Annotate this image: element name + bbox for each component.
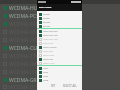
- button[interactable]: WCDMA-B19: [3, 84, 120, 90]
- staticText: WCDMA-CLR-850: [43, 46, 57, 48]
- staticText: WCDMA-J1700: [43, 62, 55, 64]
- staticText: WCDMA-J19: [9, 69, 38, 76]
- button[interactable]: WCDMA-G9: [3, 76, 120, 84]
- button[interactable]: DCS1800: [39, 20, 82, 24]
- staticText: WCDMA-170: [9, 53, 39, 60]
- button[interactable]: WCDMA-900: [39, 57, 82, 61]
- button[interactable]: WCDMA-900: [3, 36, 120, 44]
- button[interactable]: WCDMA-2600: [39, 53, 82, 57]
- button[interactable]: WCDMA-IMT: [3, 60, 120, 68]
- staticText: WCDMA-900: [43, 58, 53, 60]
- staticText: LTE B8: [43, 79, 49, 81]
- staticText: WCDMA-CLR: [9, 45, 39, 52]
- staticText: Band Mode: [39, 6, 52, 9]
- button[interactable]: SET: [46, 82, 60, 90]
- staticText: WCDMA-2600: [43, 54, 54, 56]
- button[interactable]: WCDMA-800: [39, 49, 82, 53]
- button[interactable]: WCDMA-J19: [3, 68, 120, 76]
- button[interactable]: WCDMA-800: [3, 20, 120, 28]
- staticText: WCDMA-800: [43, 50, 53, 52]
- staticText: DCS1800: [43, 21, 51, 23]
- staticText: PCS1900: [43, 25, 50, 27]
- staticText: WCDMA-800: [9, 21, 39, 28]
- staticText: WCDMA-G9: [9, 77, 37, 84]
- staticText: WCDMA-IMT: [9, 61, 40, 68]
- staticText: SET: [51, 84, 56, 88]
- button[interactable]: WCDMA-850: [3, 28, 120, 36]
- button[interactable]: WCDMA-PCS-1900: [39, 33, 82, 37]
- button[interactable]: WCDMA-850: [39, 41, 82, 45]
- button[interactable]: GSM850: [39, 12, 82, 16]
- staticText: WCDMA-850: [9, 29, 39, 36]
- button[interactable]: WCDMA-J1700: [39, 61, 82, 65]
- staticText: WCDMA-DCS-1800: [43, 38, 58, 40]
- button[interactable]: WCDMA-170: [3, 52, 120, 60]
- staticText: SELECT ALL: [63, 84, 77, 88]
- button[interactable]: WCDMA-CLR-850: [39, 45, 82, 49]
- button[interactable]: LTE B8: [39, 78, 82, 82]
- button[interactable]: GSM900: [39, 16, 82, 20]
- staticText: WCDMA-IMT-2000: [43, 30, 58, 32]
- staticText: LTE B7: [43, 75, 49, 77]
- button[interactable]: WCDMA-PCS: [3, 12, 120, 20]
- button[interactable]: SELECT ALL: [60, 82, 80, 90]
- staticText: WCDMA-850: [43, 42, 53, 44]
- button[interactable]: WCDMA-DCS-1800: [39, 37, 82, 41]
- button[interactable]: LTE B1: [39, 66, 82, 70]
- staticText: WCDMA-PCS-1900: [43, 34, 58, 36]
- staticText: WCDMA-900: [9, 37, 39, 44]
- staticText: WCDMA-B19: [9, 84, 39, 90]
- staticText: WCDMA-PCS: [9, 13, 39, 20]
- button[interactable]: LTE B3: [39, 70, 82, 74]
- button[interactable]: WCDMA-CLR: [3, 44, 120, 52]
- staticText: GSM900: [43, 17, 50, 19]
- staticText: GSM850: [43, 13, 50, 15]
- staticText: LTE B3: [43, 71, 49, 73]
- button[interactable]: LTE B7: [39, 74, 82, 78]
- button[interactable]: WCDMA-HUT: [3, 4, 120, 12]
- button[interactable]: WCDMA-IMT-2000: [39, 29, 82, 33]
- staticText: WCDMA-HUT: [9, 5, 41, 12]
- staticText: LTE B1: [43, 67, 49, 69]
- button[interactable]: PCS1900: [39, 24, 82, 28]
